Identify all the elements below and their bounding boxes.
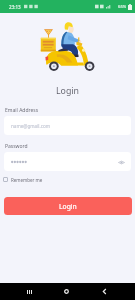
- button[interactable]: Remember me: [3, 174, 43, 185]
- button[interactable]: Home: [56, 283, 76, 300]
- staticText: Login: [59, 202, 77, 211]
- staticText: Login: [56, 85, 80, 97]
- staticText: 23:13: [9, 4, 21, 10]
- staticText: Password: [5, 143, 28, 150]
- staticText: Email Address: [5, 107, 39, 114]
- button[interactable]: Recent apps: [19, 283, 39, 300]
- button[interactable]: Login: [4, 197, 132, 215]
- button[interactable]: Back: [94, 283, 114, 300]
- button[interactable]: Show password: [117, 158, 125, 166]
- button[interactable]: name@gmail.com: [4, 116, 131, 135]
- staticText: 65%: [118, 4, 127, 10]
- button[interactable]: Show password: [4, 152, 131, 171]
- staticText: Remember me: [11, 177, 43, 183]
- staticText: name@gmail.com: [11, 123, 51, 129]
